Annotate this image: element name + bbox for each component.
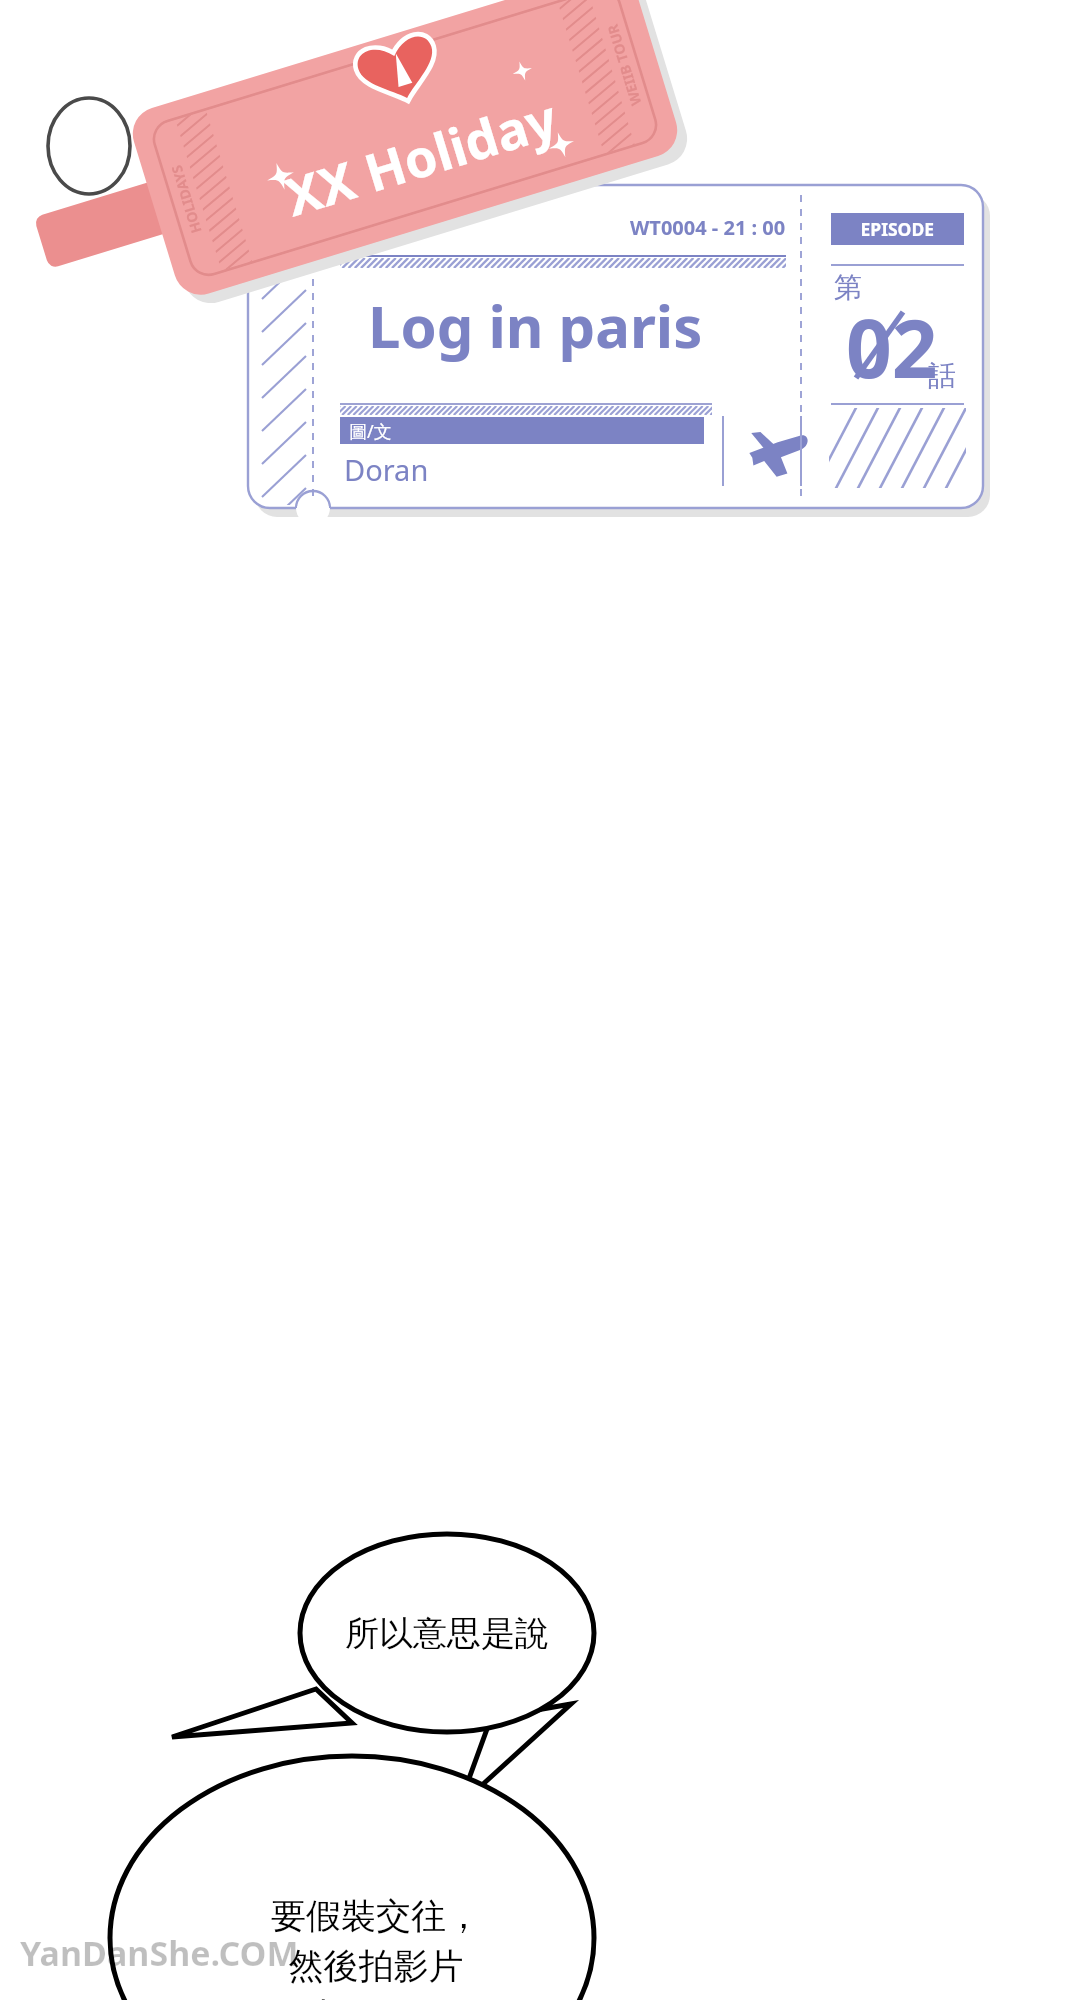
button[interactable]: Comic page XX Holiday Log in paris episo… xyxy=(0,0,1080,2000)
